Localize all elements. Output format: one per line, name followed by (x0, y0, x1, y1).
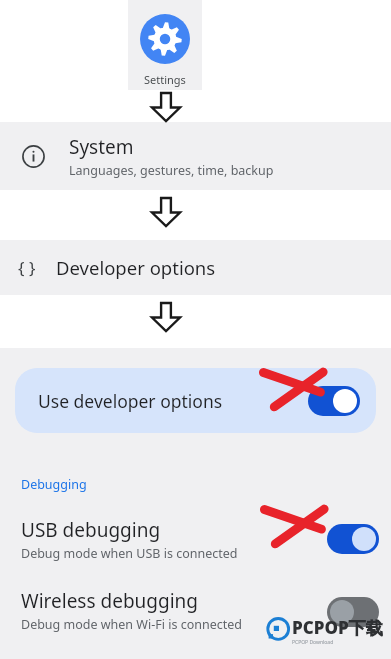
button[interactable]: { } (0, 240, 391, 295)
staticText: Developer options (56, 255, 216, 280)
staticText: Debug mode when Wi-Fi is connected (21, 616, 242, 633)
staticText: USB debugging (21, 517, 161, 543)
staticText: { } (18, 256, 36, 279)
staticText: Languages, gestures, time, backup (69, 162, 274, 179)
staticText: PCPOP Download (292, 639, 334, 646)
button[interactable]: System (0, 122, 391, 190)
button[interactable]: USB debugging (0, 508, 391, 570)
staticText: Wireless debugging (21, 588, 199, 614)
staticText: Settings (144, 72, 186, 87)
button[interactable]: Settings (128, 0, 202, 90)
other: Annotation arrow (262, 367, 330, 409)
staticText: System (69, 134, 134, 160)
button[interactable]: Wireless debugging (0, 588, 391, 650)
button[interactable]: Wireless debugging toggle, off (327, 597, 379, 627)
button[interactable]: Use developer options (15, 368, 376, 433)
staticText: Debugging (21, 476, 87, 493)
staticText: Debug mode when USB is connected (21, 545, 238, 562)
other: Annotation arrow (263, 504, 331, 546)
staticText: PCPOP下载 (292, 616, 383, 639)
button[interactable]: Use developer options toggle, on (308, 386, 360, 416)
button[interactable]: USB debugging toggle, on (327, 524, 379, 554)
staticText: Use developer options (38, 389, 223, 413)
